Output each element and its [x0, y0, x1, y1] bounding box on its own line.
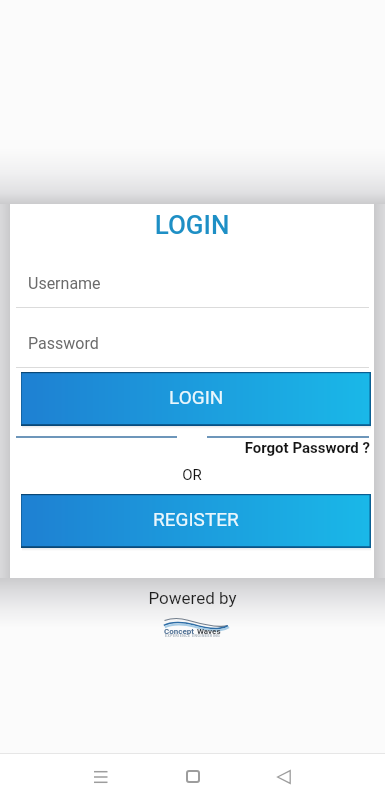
button[interactable]: LOGIN: [21, 372, 371, 428]
button[interactable]: Password: [16, 334, 369, 368]
staticText: LOGIN: [10, 210, 374, 240]
staticText: Password: [28, 334, 99, 353]
staticText: Concept: [164, 627, 194, 636]
button[interactable]: Back: [260, 758, 308, 795]
staticText: EXPERIENCE ENGINEERING: [165, 634, 221, 638]
button[interactable]: REGISTER: [21, 494, 371, 550]
button[interactable]: Username: [16, 274, 369, 308]
button[interactable]: Home: [169, 758, 217, 795]
button[interactable]: Recent apps: [77, 758, 125, 795]
staticText: Waves: [197, 627, 221, 636]
staticText: Powered by: [0, 588, 385, 608]
staticText: Username: [28, 274, 101, 293]
staticText: LOGIN: [169, 386, 224, 408]
staticText: OR: [10, 466, 374, 484]
button[interactable]: Forgot Password ?: [170, 439, 370, 457]
staticText: REGISTER: [153, 508, 239, 530]
